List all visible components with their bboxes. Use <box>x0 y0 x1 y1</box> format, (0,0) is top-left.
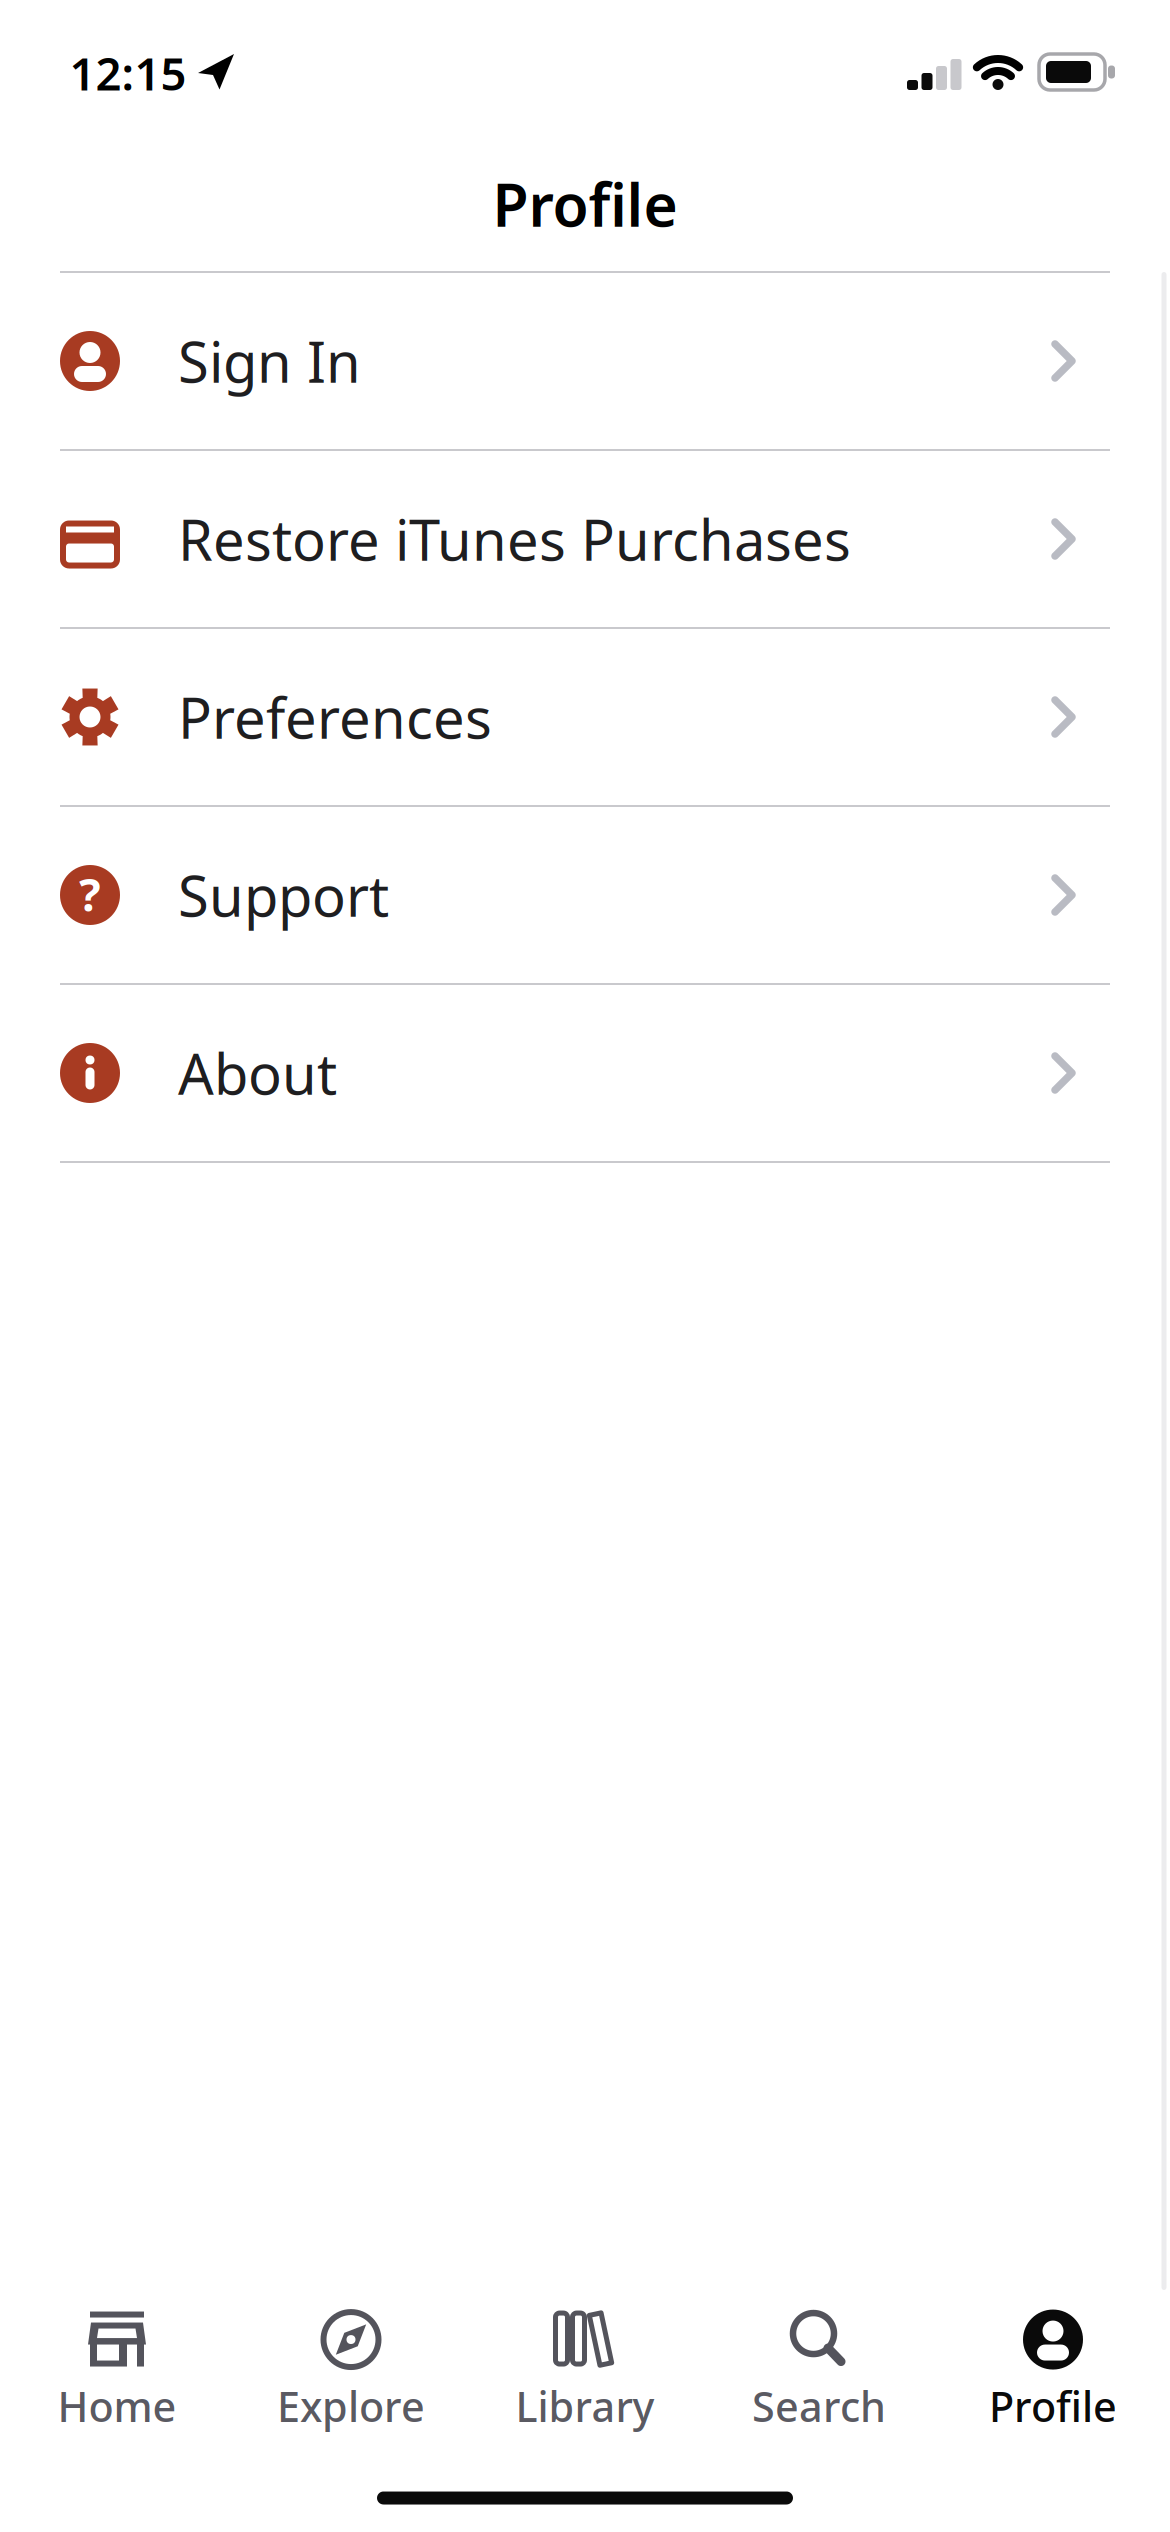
staticText: Sign In <box>178 324 361 398</box>
staticText: Preferences <box>178 680 492 754</box>
staticText: About <box>178 1036 337 1110</box>
staticText: Restore iTunes Purchases <box>178 502 851 576</box>
button[interactable]: Explore <box>234 2291 468 2451</box>
button[interactable]: About <box>0 985 1170 1161</box>
staticText: ? <box>79 864 101 924</box>
button[interactable]: Search <box>702 2291 936 2451</box>
staticText: 12:15 <box>69 43 186 103</box>
button[interactable]: Profile <box>936 2291 1170 2451</box>
button[interactable]: Preferences <box>0 629 1170 805</box>
staticText: Profile <box>989 2379 1117 2433</box>
button[interactable]: Restore iTunes Purchases <box>0 451 1170 627</box>
staticText: Search <box>752 2379 886 2433</box>
button[interactable]: ? <box>0 807 1170 983</box>
staticText: Library <box>515 2379 654 2433</box>
button[interactable]: Home <box>0 2291 234 2451</box>
staticText: Support <box>178 858 389 932</box>
staticText: Home <box>57 2379 176 2433</box>
staticText: Explore <box>277 2379 425 2433</box>
button[interactable]: Library <box>468 2291 702 2451</box>
button[interactable]: Sign In <box>0 273 1170 449</box>
staticText: Profile <box>492 165 677 243</box>
